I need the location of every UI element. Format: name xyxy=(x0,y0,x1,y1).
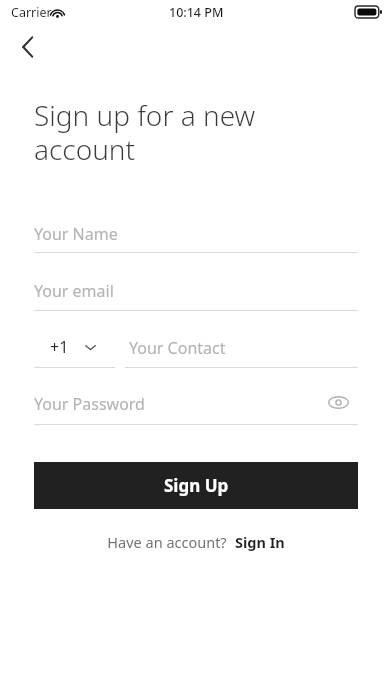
button[interactable]: +1 xyxy=(34,332,115,362)
button[interactable]: Your Contact xyxy=(129,336,249,360)
staticText: Your Name xyxy=(34,223,118,245)
staticText: Carrier xyxy=(11,4,52,21)
button[interactable]: Sign In xyxy=(235,532,285,552)
button[interactable]: Your Password xyxy=(34,392,154,416)
staticText: +1 xyxy=(50,336,69,358)
staticText: Sign up for a new account xyxy=(34,96,256,168)
staticText: Sign In xyxy=(235,532,285,552)
button[interactable]: Sign Up xyxy=(34,462,358,509)
button[interactable]: Back xyxy=(6,30,50,64)
button[interactable]: Show password xyxy=(322,388,354,416)
staticText: Your Password xyxy=(34,393,145,415)
staticText: Sign Up xyxy=(164,474,229,497)
staticText: Your email xyxy=(34,280,114,302)
button[interactable]: Your email xyxy=(34,279,154,303)
button[interactable]: Your Name xyxy=(34,222,154,246)
staticText: 10:14 PM xyxy=(169,4,224,21)
staticText: Have an account? xyxy=(107,532,227,552)
staticText: Your Contact xyxy=(129,337,226,359)
